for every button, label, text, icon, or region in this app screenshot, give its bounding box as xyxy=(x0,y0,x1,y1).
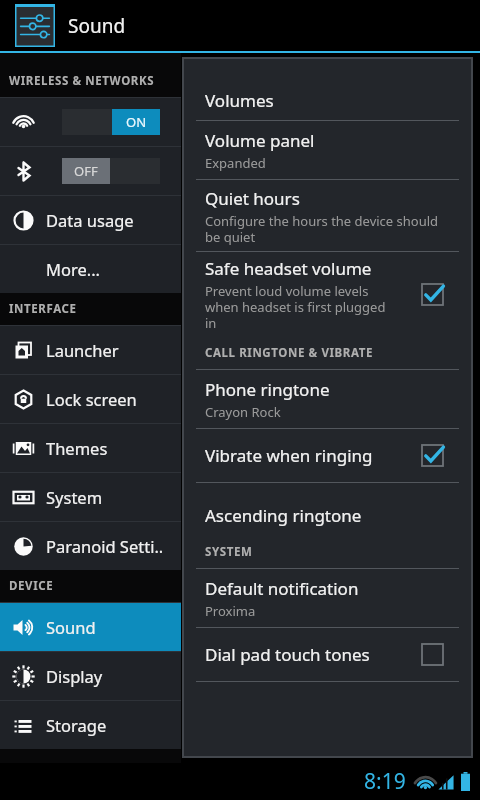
staticText: Crayon Rock xyxy=(205,403,281,421)
staticText: Configure the hours the device should be… xyxy=(205,212,439,245)
staticText: Proxima xyxy=(205,602,256,620)
button[interactable]: Volume panel xyxy=(184,121,471,179)
staticText: Expanded xyxy=(205,154,266,172)
button[interactable]: More... xyxy=(0,245,181,293)
staticText: 8:19 xyxy=(364,767,406,796)
button[interactable]: Safe headset volume xyxy=(184,252,471,336)
staticText: Lock screen xyxy=(46,388,137,410)
staticText: Display xyxy=(46,665,103,687)
button[interactable]: Wi-Fi on xyxy=(0,98,181,146)
button[interactable]: Phone ringtone xyxy=(184,370,471,428)
button[interactable]: Paranoid Setti.. xyxy=(0,522,181,570)
staticText: INTERFACE xyxy=(9,301,77,317)
staticText: Safe headset volume xyxy=(205,257,372,280)
button[interactable]: Display xyxy=(0,652,181,700)
button[interactable]: Storage xyxy=(0,701,181,749)
staticText: System xyxy=(46,486,103,508)
button[interactable]: Default notification xyxy=(184,569,471,627)
staticText: Dial pad touch tones xyxy=(205,643,370,666)
button[interactable]: Vibrate when ringing xyxy=(184,429,471,482)
staticText: Storage xyxy=(46,714,107,736)
staticText: ON xyxy=(126,113,147,131)
button[interactable]: Quiet hours xyxy=(184,180,471,251)
staticText: OFF xyxy=(74,162,98,180)
staticText: Default notification xyxy=(205,577,359,600)
staticText: DEVICE xyxy=(9,578,54,594)
button[interactable]: Dial pad touch tones checkbox xyxy=(422,644,443,665)
button[interactable]: Vibrate when ringing checkbox xyxy=(422,445,443,466)
staticText: Themes xyxy=(46,437,108,459)
staticText: Phone ringtone xyxy=(205,378,330,401)
button[interactable]: System xyxy=(0,473,181,521)
button[interactable]: Sound xyxy=(0,603,181,651)
button[interactable]: Lock screen xyxy=(0,375,181,423)
staticText: Volume panel xyxy=(205,129,315,152)
staticText: CALL RINGTONE & VIBRATE xyxy=(205,345,373,361)
staticText: Ascending ringtone xyxy=(205,504,362,527)
button[interactable]: Launcher xyxy=(0,326,181,374)
staticText: Quiet hours xyxy=(205,187,300,210)
button[interactable]: Bluetooth off xyxy=(0,147,181,195)
button[interactable]: Dial pad touch tones xyxy=(184,628,471,681)
button[interactable]: Themes xyxy=(0,424,181,472)
staticText: More... xyxy=(46,258,101,280)
button[interactable]: Safe headset volume checkbox xyxy=(422,284,443,305)
button[interactable]: Data usage xyxy=(0,196,181,244)
button[interactable]: Volumes xyxy=(184,80,471,120)
staticText: SYSTEM xyxy=(205,544,253,560)
button[interactable]: Ascending ringtone xyxy=(184,495,471,535)
staticText: Sound xyxy=(46,616,96,638)
staticText: Prevent loud volume levels when headset … xyxy=(205,282,386,331)
staticText: Vibrate when ringing xyxy=(205,444,373,467)
staticText: Data usage xyxy=(46,209,134,231)
staticText: Paranoid Setti.. xyxy=(46,535,164,557)
staticText: WIRELESS & NETWORKS xyxy=(9,73,155,89)
staticText: Sound xyxy=(68,13,126,39)
staticText: Launcher xyxy=(46,339,119,361)
staticText: Volumes xyxy=(205,89,274,112)
